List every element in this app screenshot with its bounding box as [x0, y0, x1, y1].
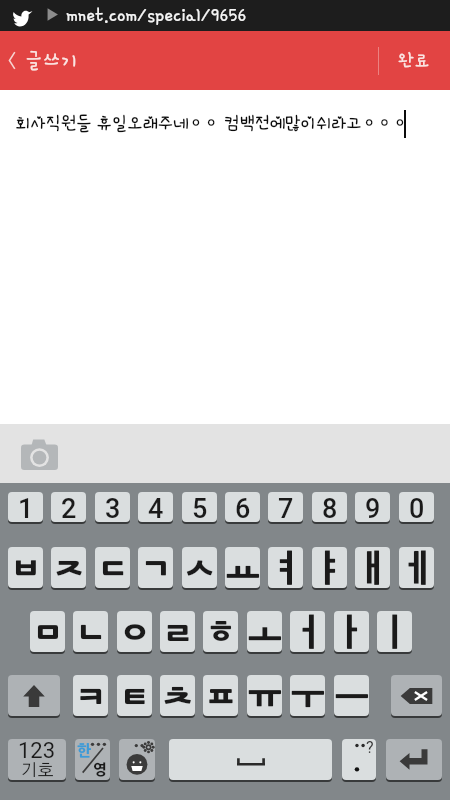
button[interactable]: ㅜ [290, 675, 325, 716]
staticText: ㅌ [118, 678, 152, 714]
staticText: ㅛ [226, 550, 260, 586]
button[interactable]: ㄷ [95, 547, 130, 588]
staticText: 4 [148, 493, 164, 522]
staticText: 6 [235, 493, 251, 522]
button[interactable]: Enter [386, 739, 442, 780]
staticText: ㅎ [204, 614, 238, 650]
button[interactable]: Backspace [391, 675, 442, 716]
staticText: ㅓ [291, 614, 325, 650]
button[interactable]: Korean English toggle [75, 739, 110, 780]
staticText: ㅜ [291, 678, 325, 714]
staticText: 2 [61, 493, 77, 522]
button[interactable]: ㄴ [73, 611, 108, 652]
staticText: ㄷ [96, 550, 130, 586]
staticText: ㅑ [313, 550, 347, 586]
staticText: ㄴ [74, 614, 108, 650]
staticText: ㅊ [161, 678, 195, 714]
staticText: ㅔ [400, 550, 434, 586]
staticText: ㅍ [204, 678, 238, 714]
button[interactable]: ㅂ [8, 547, 43, 588]
staticText: 0 [409, 493, 425, 522]
button[interactable]: ㅕ [268, 547, 303, 588]
staticText: ㅈ [52, 550, 86, 586]
button[interactable]: ㅈ [51, 547, 86, 588]
button[interactable]: ㄱ [138, 547, 173, 588]
staticText: ㅐ [356, 550, 390, 586]
button[interactable]: 6 [225, 492, 260, 522]
button[interactable]: ㅑ [312, 547, 347, 588]
staticText: 9 [365, 493, 381, 522]
button[interactable]: ㅓ [290, 611, 325, 652]
button[interactable]: Emoji [119, 739, 155, 780]
button[interactable]: ㅇ [117, 611, 152, 652]
button[interactable]: ㅁ [30, 611, 65, 652]
button[interactable]: ㅡ [334, 675, 369, 716]
staticText: ㅂ [9, 550, 43, 586]
staticText: 7 [278, 493, 294, 522]
staticText: ㅗ [248, 614, 282, 650]
button[interactable]: ㅣ [377, 611, 412, 652]
button[interactable]: 글쓰기 [0, 31, 120, 90]
staticText: 8 [322, 493, 338, 522]
button[interactable]: ㅋ [73, 675, 108, 716]
staticText: 5 [192, 493, 208, 522]
staticText: 한 [77, 743, 92, 758]
staticText: 글쓰기 [25, 49, 79, 71]
staticText: ㅕ [269, 550, 303, 586]
staticText: 1 [18, 493, 34, 522]
staticText: ㅠ [248, 678, 282, 714]
button[interactable]: ㅍ [203, 675, 238, 716]
staticText: 3 [105, 493, 121, 522]
button[interactable]: 123 [8, 739, 66, 780]
button[interactable]: Punctuation [342, 739, 376, 780]
button[interactable]: ㅐ [355, 547, 390, 588]
button[interactable]: ㅔ [399, 547, 434, 588]
button[interactable]: 완료 [378, 31, 450, 90]
staticText: 회사직원들 휴일오래주네ㅇㅇ 컴백전에많이쉬라고ㅇㅇㅇ [15, 114, 408, 133]
button[interactable]: ㅏ [334, 611, 369, 652]
button[interactable]: 1 [8, 492, 43, 522]
staticText: ㅣ [378, 614, 412, 650]
staticText: ㄹ [161, 614, 195, 650]
button[interactable]: 5 [182, 492, 217, 522]
staticText: mnet.com/special/9656 [66, 5, 247, 26]
button[interactable]: 7 [268, 492, 303, 522]
staticText: ㅋ [74, 678, 108, 714]
button[interactable]: ㅅ [182, 547, 217, 588]
staticText: ㅏ [335, 614, 369, 650]
staticText: ㅡ [335, 678, 369, 714]
staticText: ㄱ [139, 550, 173, 586]
staticText: ㅇ [118, 614, 152, 650]
button[interactable]: Space [169, 739, 332, 780]
button[interactable]: ㅊ [160, 675, 195, 716]
button[interactable]: 3 [95, 492, 130, 522]
button[interactable]: Shift [8, 675, 60, 716]
button[interactable]: ㅎ [203, 611, 238, 652]
staticText: ? [366, 739, 374, 757]
staticText: 영 [93, 762, 108, 777]
staticText: 완료 [398, 50, 431, 70]
button[interactable]: 9 [355, 492, 390, 522]
button[interactable]: 4 [138, 492, 173, 522]
staticText: 기호 [21, 762, 54, 777]
staticText: ㅅ [183, 550, 217, 586]
staticText: ㅁ [31, 614, 65, 650]
button[interactable]: 8 [312, 492, 347, 522]
button[interactable]: Camera [9, 431, 69, 477]
staticText: 123 [18, 739, 56, 764]
button[interactable]: ㅛ [225, 547, 260, 588]
button[interactable]: ㅗ [247, 611, 282, 652]
button[interactable]: 0 [399, 492, 434, 522]
button[interactable]: ㅌ [117, 675, 152, 716]
button[interactable]: ㅠ [247, 675, 282, 716]
button[interactable]: ㄹ [160, 611, 195, 652]
button[interactable]: 2 [51, 492, 86, 522]
